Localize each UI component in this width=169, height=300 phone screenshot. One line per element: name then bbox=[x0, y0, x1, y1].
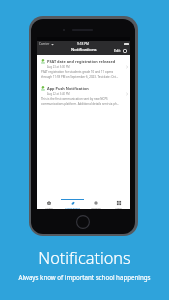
staticText: Edit bbox=[114, 48, 121, 53]
staticText: Aug 22 at 3:40 PM bbox=[47, 92, 70, 96]
staticText: Aug 23 at 5:00 PM bbox=[47, 65, 70, 69]
button[interactable]: More bbox=[107, 199, 130, 209]
staticText: Notifications bbox=[71, 47, 97, 53]
staticText: Home bbox=[45, 206, 53, 209]
staticText: through 11:59 PM on September 6, 2023. T… bbox=[41, 75, 119, 79]
button[interactable]: PSAT date and registration released bbox=[37, 55, 130, 82]
staticText: App Push Notification bbox=[47, 86, 89, 91]
staticText: Notifications bbox=[65, 206, 80, 209]
button[interactable]: Edit bbox=[114, 48, 121, 53]
button[interactable]: Settings bbox=[84, 199, 107, 209]
staticText: More bbox=[115, 206, 122, 209]
staticText: Always know of important school happenin… bbox=[18, 273, 151, 281]
staticText: 9:18 PM bbox=[77, 42, 90, 46]
staticText: communications platform. Additional deta… bbox=[41, 102, 120, 106]
button[interactable]: Compose bbox=[123, 49, 127, 53]
button[interactable]: Notifications bbox=[61, 199, 84, 209]
button[interactable]: Home bbox=[37, 199, 61, 209]
button[interactable]: App Push Notification bbox=[37, 82, 130, 109]
staticText: Settings bbox=[91, 206, 101, 209]
staticText: This is the first communication sent by … bbox=[41, 97, 108, 101]
staticText: Notifications bbox=[38, 247, 131, 269]
staticText: PSAT date and registration released bbox=[47, 59, 116, 64]
staticText: PSAT registration for students grade 10 … bbox=[41, 70, 114, 74]
staticText: Carrier bbox=[39, 42, 50, 46]
